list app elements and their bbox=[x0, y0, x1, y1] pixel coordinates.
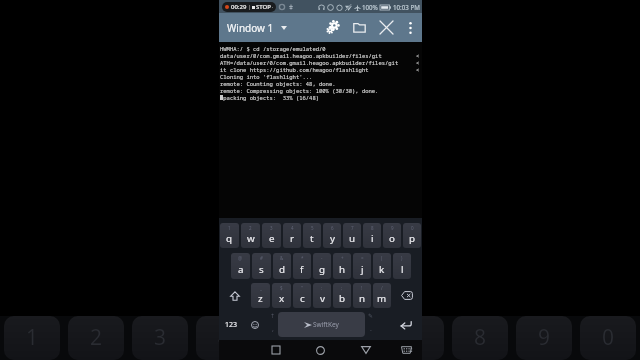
staticText: f bbox=[300, 263, 304, 276]
staticText: . bbox=[370, 324, 372, 334]
button[interactable]: 2 bbox=[241, 223, 260, 248]
button[interactable]: SwiftKey bbox=[278, 312, 365, 337]
staticText: 8 bbox=[371, 225, 374, 231]
staticText: = bbox=[361, 255, 364, 261]
button[interactable]: Emoji bbox=[243, 312, 267, 337]
button[interactable]: 1 bbox=[220, 223, 239, 248]
button[interactable]: 5 bbox=[303, 223, 321, 248]
button[interactable]: Recent apps bbox=[263, 340, 289, 360]
staticText: a bbox=[238, 263, 244, 276]
button[interactable]: * bbox=[293, 253, 311, 279]
button[interactable]: 7 bbox=[343, 223, 361, 248]
staticText: e bbox=[269, 232, 275, 245]
button[interactable]: _ bbox=[251, 283, 270, 308]
staticText: h bbox=[339, 263, 346, 276]
staticText: remote: Compressing objects: 100% (30/30… bbox=[220, 87, 379, 94]
staticText: 7 bbox=[351, 225, 354, 231]
staticText: ) bbox=[401, 255, 403, 261]
staticText: w bbox=[247, 232, 255, 245]
button[interactable]: Backspace bbox=[392, 283, 422, 308]
button[interactable]: : bbox=[313, 283, 331, 308]
staticText: 0 bbox=[411, 225, 414, 231]
staticText: : bbox=[321, 285, 323, 291]
staticText: @ bbox=[238, 255, 243, 261]
button[interactable]: Window 1 bbox=[219, 16, 291, 40]
staticText: y bbox=[330, 232, 335, 245]
button[interactable]: 0 bbox=[403, 223, 421, 248]
button[interactable]: Shift bbox=[219, 283, 250, 308]
staticText: s bbox=[259, 263, 264, 276]
staticText: n bbox=[359, 292, 366, 305]
staticText: 5 bbox=[282, 323, 295, 352]
button[interactable]: 9 bbox=[383, 223, 401, 248]
staticText: c bbox=[300, 292, 305, 305]
staticText: - bbox=[321, 255, 323, 261]
button[interactable]: Home bbox=[307, 340, 333, 360]
staticText: g bbox=[319, 263, 326, 276]
staticText: r bbox=[290, 232, 295, 245]
button[interactable]: & bbox=[273, 253, 291, 279]
staticText: q bbox=[226, 232, 233, 245]
staticText: m bbox=[377, 292, 387, 305]
staticText: b bbox=[339, 292, 346, 305]
button[interactable]: / bbox=[373, 283, 391, 308]
staticText: < bbox=[416, 66, 420, 73]
button[interactable]: ; bbox=[333, 283, 351, 308]
button[interactable]: = bbox=[353, 253, 371, 279]
staticText: < bbox=[416, 59, 420, 66]
staticText: ; bbox=[341, 285, 343, 291]
button[interactable]: # bbox=[252, 253, 271, 279]
staticText: 123 bbox=[225, 320, 238, 330]
staticText: 10:03 PM bbox=[393, 3, 420, 11]
staticText: SwiftKey bbox=[313, 320, 339, 329]
button[interactable]: + bbox=[333, 253, 351, 279]
staticText: v bbox=[320, 292, 325, 305]
button[interactable]: 4 bbox=[283, 223, 301, 248]
staticText: ATH=/data/user/0/com.gmail.heagoo.apkbui… bbox=[220, 59, 399, 66]
staticText: l bbox=[401, 263, 404, 276]
staticText: i bbox=[371, 232, 374, 245]
staticText: 3 bbox=[270, 225, 273, 231]
staticText: # bbox=[260, 255, 263, 261]
button[interactable]: More options bbox=[400, 13, 420, 42]
staticText: 2 bbox=[249, 225, 252, 231]
button[interactable]: Close window bbox=[373, 13, 400, 42]
button[interactable]: 6 bbox=[323, 223, 341, 248]
button[interactable]: ) bbox=[393, 253, 411, 279]
button[interactable]: ( bbox=[373, 253, 391, 279]
staticText: 5 bbox=[311, 225, 314, 231]
button[interactable]: " bbox=[293, 283, 311, 308]
staticText: k bbox=[379, 263, 385, 276]
staticText: p bbox=[409, 232, 416, 245]
button[interactable]: Hide keyboard bbox=[393, 340, 419, 360]
button[interactable]: 3 bbox=[262, 223, 281, 248]
staticText: 9 bbox=[538, 323, 551, 352]
button[interactable]: ! bbox=[353, 283, 371, 308]
staticText: 4 bbox=[218, 323, 231, 352]
staticText: 8 bbox=[474, 323, 487, 352]
button[interactable]: - bbox=[313, 253, 331, 279]
staticText: o bbox=[389, 232, 395, 245]
button[interactable]: 8 bbox=[363, 223, 381, 248]
button[interactable]: $ bbox=[272, 283, 291, 308]
staticText: ( bbox=[381, 255, 383, 261]
button[interactable]: Stop recording bbox=[225, 2, 273, 12]
button[interactable]: Open folder bbox=[346, 13, 373, 42]
staticText: 6 bbox=[346, 323, 359, 352]
staticText: j bbox=[361, 263, 364, 276]
staticText: * bbox=[301, 255, 304, 261]
button[interactable]: Back bbox=[353, 340, 379, 360]
staticText: it clone https://github.com/heagoo/flash… bbox=[220, 66, 369, 73]
staticText: & bbox=[280, 255, 284, 261]
staticText: , bbox=[272, 324, 274, 334]
button[interactable]: @ bbox=[231, 253, 250, 279]
button[interactable]: Settings bbox=[319, 13, 346, 42]
staticText: / bbox=[381, 285, 383, 291]
staticText: data/user/0/com.gmail.heagoo.apkbuilder/… bbox=[220, 52, 382, 59]
staticText: _ bbox=[260, 285, 262, 291]
button[interactable]: 123 bbox=[219, 312, 243, 337]
staticText: + bbox=[341, 255, 344, 261]
staticText: Cloning into 'flashlight'... bbox=[220, 73, 313, 80]
button[interactable]: Enter bbox=[377, 312, 422, 337]
staticText: 00:29 bbox=[231, 3, 247, 11]
